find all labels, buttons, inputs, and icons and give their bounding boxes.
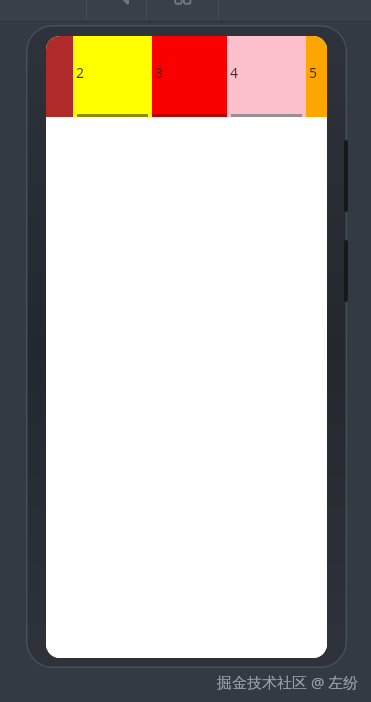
button[interactable]: 3 [152,36,227,117]
other: Back [112,0,134,22]
staticText: 2 [76,63,85,82]
staticText: 3 [155,63,164,82]
staticText: 4 [230,63,239,82]
staticText: 掘金技术社区 @ 左纷 [217,672,359,692]
staticText: 5 [309,63,318,82]
button[interactable]: 4 [227,36,306,117]
button[interactable]: 2 [73,36,152,117]
other: Recents [172,0,194,22]
button[interactable] [46,36,73,117]
button[interactable]: 5 [306,36,327,117]
